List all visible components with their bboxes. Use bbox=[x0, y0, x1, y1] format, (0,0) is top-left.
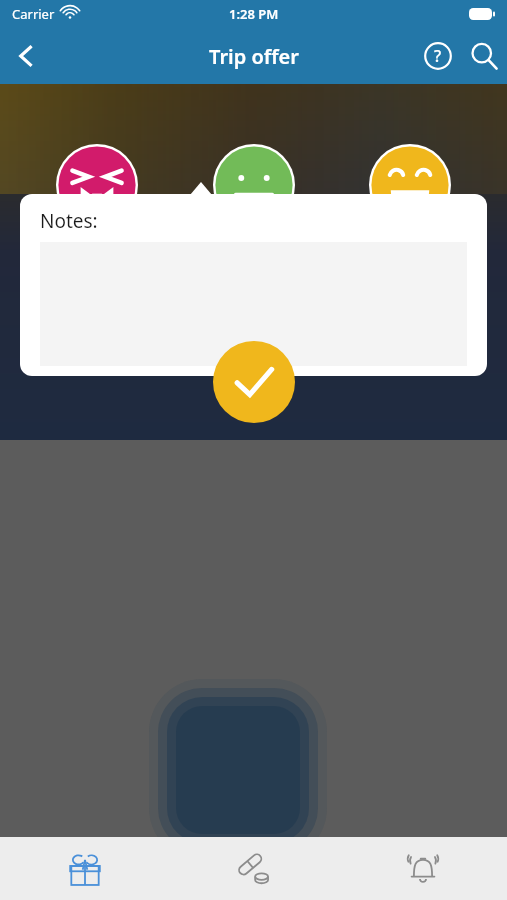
staticText: Notes: bbox=[40, 208, 98, 234]
button[interactable]: Search bbox=[461, 33, 507, 79]
button[interactable] bbox=[40, 242, 467, 366]
staticText: Carrier bbox=[12, 5, 55, 23]
staticText: Happy bbox=[380, 234, 441, 260]
staticText: Angry bbox=[69, 234, 126, 260]
staticText: Suggestion bbox=[201, 234, 307, 260]
button[interactable]: Angry bbox=[50, 142, 144, 262]
staticText: Trip offer bbox=[209, 43, 299, 70]
button[interactable]: Happy bbox=[363, 142, 457, 262]
button[interactable]: Back bbox=[0, 28, 52, 84]
button[interactable]: Help bbox=[415, 33, 461, 79]
button[interactable]: Medication bbox=[169, 837, 338, 900]
staticText: 1:28 PM bbox=[229, 5, 279, 23]
button[interactable]: Notifications bbox=[338, 837, 507, 900]
button[interactable]: Confirm bbox=[213, 341, 295, 423]
button[interactable]: Gifts bbox=[0, 837, 169, 900]
staticText: ? bbox=[434, 45, 442, 67]
button[interactable]: Suggestion bbox=[195, 142, 313, 262]
